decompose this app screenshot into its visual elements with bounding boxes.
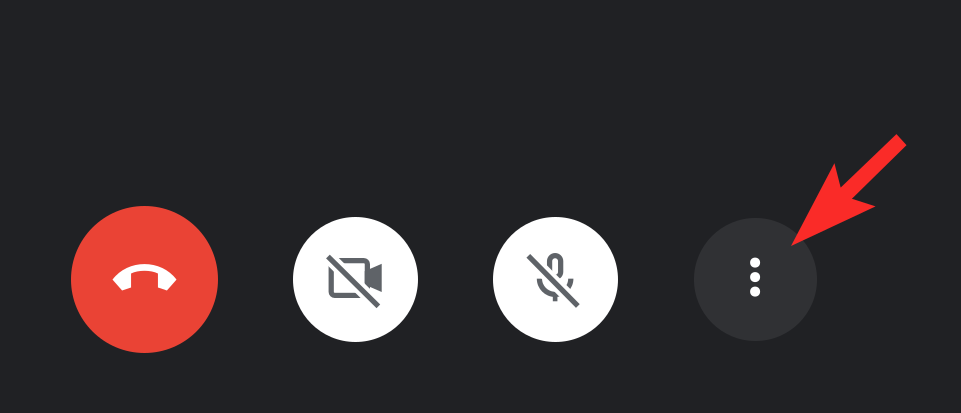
button[interactable]: Turn on camera [293,217,418,342]
button[interactable]: Unmute microphone [493,217,618,342]
button[interactable]: More options [694,218,817,341]
button[interactable]: End call [71,206,218,353]
